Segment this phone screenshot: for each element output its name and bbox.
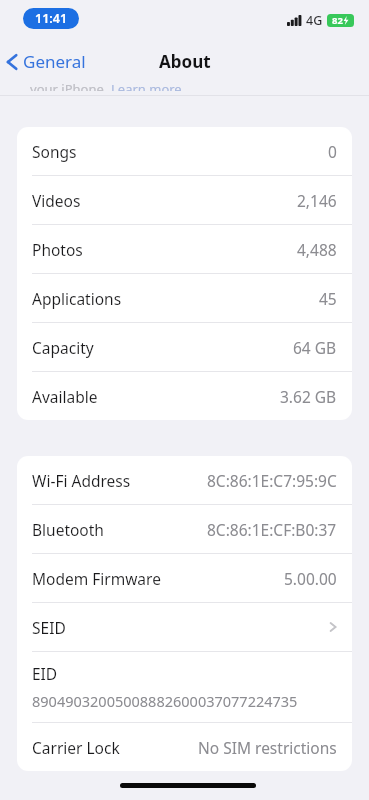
staticText: Capacity (32, 337, 94, 358)
button[interactable]: Applications (17, 274, 352, 322)
staticText: General (23, 50, 86, 73)
staticText: 11:41 (35, 10, 68, 27)
staticText: 89049032005008882600037077224735 (32, 691, 298, 711)
staticText: EID (32, 663, 58, 684)
staticText: 5.00.00 (284, 568, 337, 589)
button[interactable]: Wi-Fi Address (17, 456, 352, 504)
staticText: 4,488 (297, 239, 337, 260)
staticText: About (159, 50, 211, 73)
button[interactable]: Available (17, 372, 352, 420)
button[interactable]: Carrier Lock (17, 723, 352, 771)
staticText: 8C:86:1E:C7:95:9C (207, 470, 337, 491)
button[interactable]: Back to General (0, 45, 96, 78)
staticText: your iPhone. (30, 80, 111, 91)
button[interactable]: Bluetooth (17, 505, 352, 553)
staticText: Modem Firmware (32, 568, 161, 589)
button[interactable]: Photos (17, 225, 352, 273)
staticText: 64 GB (293, 337, 337, 358)
button[interactable]: Modem Firmware (17, 554, 352, 602)
staticText: Applications (32, 288, 122, 309)
button[interactable]: EID (17, 652, 352, 722)
staticText: Carrier Lock (32, 737, 120, 758)
staticText: Learn more... (111, 80, 193, 91)
staticText: Videos (32, 190, 81, 211)
staticText: 2,146 (297, 190, 337, 211)
button[interactable]: Songs (17, 127, 352, 175)
staticText: Photos (32, 239, 83, 260)
button[interactable]: Capacity (17, 323, 352, 371)
staticText: 4G (306, 12, 323, 29)
staticText: No SIM restrictions (198, 737, 337, 758)
staticText: 3.62 GB (280, 386, 337, 407)
button[interactable]: SEID (17, 603, 352, 651)
staticText: 82 (332, 14, 343, 27)
staticText: SEID (32, 617, 66, 638)
button[interactable]: Videos (17, 176, 352, 224)
staticText: 0 (328, 141, 337, 162)
staticText: Bluetooth (32, 519, 104, 540)
staticText: Wi-Fi Address (32, 470, 131, 491)
staticText: 8C:86:1E:CF:B0:37 (207, 519, 337, 540)
staticText: Songs (32, 141, 77, 162)
staticText: 45 (319, 288, 337, 309)
staticText: Available (32, 386, 98, 407)
